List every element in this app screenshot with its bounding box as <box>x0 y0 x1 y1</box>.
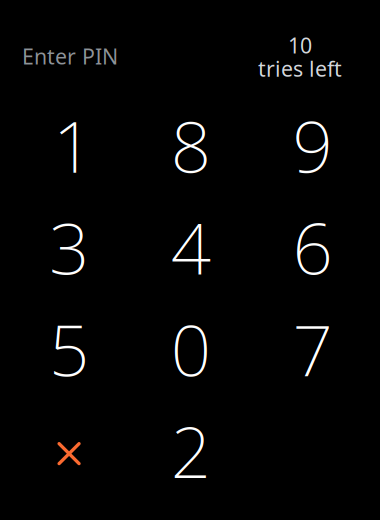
button[interactable]: 3 <box>8 196 130 298</box>
button[interactable]: Delete <box>8 400 130 502</box>
button[interactable]: 0 <box>130 298 252 400</box>
staticText: 9 <box>293 98 333 192</box>
button[interactable]: 2 <box>130 400 252 502</box>
staticText: 3 <box>49 200 89 294</box>
button[interactable]: 9 <box>252 94 373 196</box>
button[interactable]: 5 <box>8 298 130 400</box>
staticText: 8 <box>171 98 211 192</box>
staticText: tries left <box>258 54 342 83</box>
button[interactable]: 1 <box>8 94 130 196</box>
staticText: 1 <box>53 98 93 192</box>
button[interactable]: 4 <box>130 196 252 298</box>
button[interactable]: 8 <box>130 94 252 196</box>
staticText: Enter PIN <box>22 42 118 70</box>
button[interactable]: 6 <box>252 196 373 298</box>
staticText: 5 <box>49 302 89 396</box>
button[interactable]: 7 <box>252 298 373 400</box>
staticText: 0 <box>171 302 211 396</box>
staticText: 4 <box>171 200 211 294</box>
staticText: 2 <box>171 404 211 497</box>
staticText: 7 <box>293 302 333 396</box>
staticText: 10 <box>288 31 312 59</box>
staticText: 6 <box>293 200 333 294</box>
